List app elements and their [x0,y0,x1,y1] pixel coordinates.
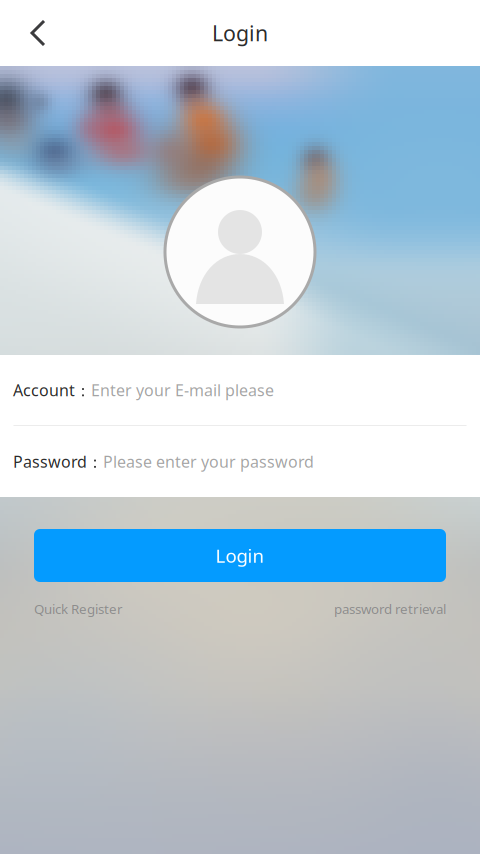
button[interactable]: password retrieval [334,600,446,618]
staticText: Login [215,543,264,568]
staticText: Login [212,19,268,47]
staticText: Password： [13,451,103,472]
staticText: password retrieval [334,600,446,618]
staticText: Account： [13,379,91,401]
staticText: Enter your E-mail please [91,379,274,401]
staticText: Quick Register [34,600,123,618]
button[interactable]: Quick Register [34,600,123,618]
button[interactable]: Login [34,529,446,582]
button[interactable]: Back [14,11,62,55]
staticText: Please enter your password [103,451,314,472]
